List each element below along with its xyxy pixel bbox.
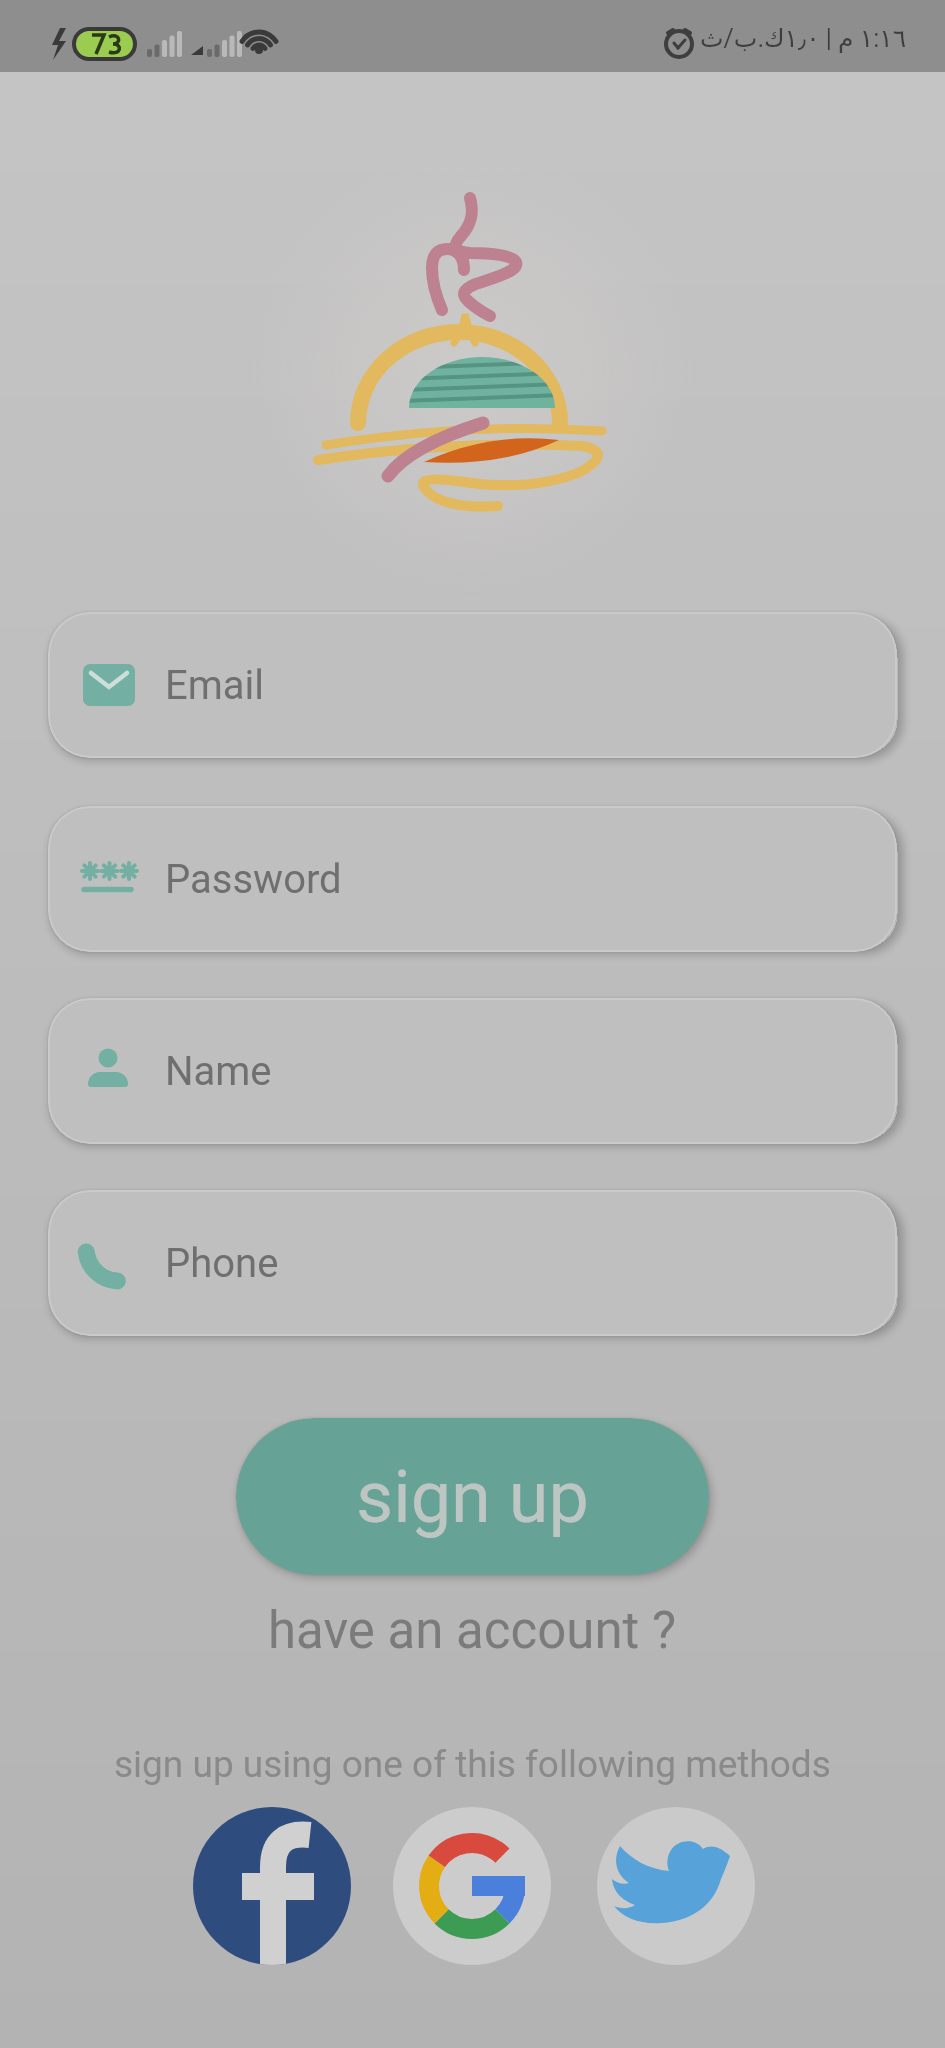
staticText: sign up using one of this following meth… (114, 1743, 831, 1786)
button[interactable]: Name (48, 998, 897, 1144)
staticText: Password (165, 856, 342, 903)
staticText: ١:١٦ م | ١٫٠ك.ب/ث (700, 24, 907, 53)
button[interactable]: Password (48, 806, 897, 952)
button[interactable]: Email (48, 612, 897, 758)
staticText: Name (165, 1048, 272, 1095)
button[interactable]: have an account ? (268, 1601, 677, 1661)
staticText: sign up (356, 1455, 589, 1539)
button[interactable]: sign up (236, 1418, 709, 1575)
staticText: Email (165, 662, 265, 709)
button[interactable] (597, 1807, 755, 1965)
button[interactable] (193, 1807, 351, 1965)
button[interactable] (393, 1807, 551, 1965)
button[interactable]: Phone (48, 1190, 897, 1336)
staticText: Phone (165, 1240, 279, 1287)
